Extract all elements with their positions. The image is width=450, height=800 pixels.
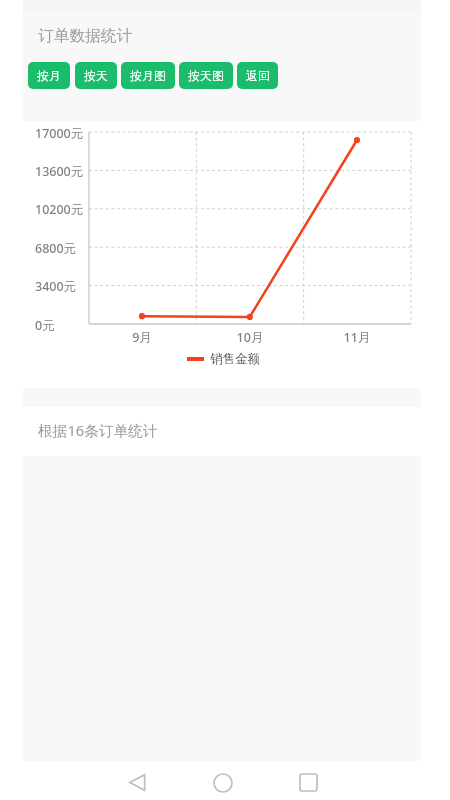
staticText: 按天图 xyxy=(188,68,224,83)
staticText: 9月 xyxy=(112,329,172,346)
staticText: 按天 xyxy=(84,68,108,83)
staticText: 根据16条订单统计 xyxy=(38,420,158,440)
button[interactable]: Home xyxy=(199,763,247,800)
staticText: 10200元 xyxy=(35,201,84,218)
staticText: 按月 xyxy=(37,68,61,83)
staticText: 6800元 xyxy=(35,240,77,257)
button[interactable]: 按月图 xyxy=(121,62,175,89)
staticText: 销售金额 xyxy=(210,351,260,367)
staticText: 11月 xyxy=(327,329,387,346)
staticText: 0元 xyxy=(35,317,55,334)
button[interactable]: Back xyxy=(113,763,161,800)
staticText: 13600元 xyxy=(35,163,84,180)
button[interactable]: 按天图 xyxy=(179,62,233,89)
button[interactable]: 按月 xyxy=(28,62,70,89)
button[interactable]: 返回 xyxy=(237,62,278,89)
staticText: 按月图 xyxy=(130,68,166,83)
staticText: 返回 xyxy=(246,68,270,83)
staticText: 10月 xyxy=(220,329,280,346)
button[interactable]: 按天 xyxy=(75,62,117,89)
button[interactable]: Recents xyxy=(284,763,332,800)
staticText: 3400元 xyxy=(35,278,77,295)
staticText: 17000元 xyxy=(35,125,84,142)
staticText: 订单数据统计 xyxy=(38,26,133,46)
